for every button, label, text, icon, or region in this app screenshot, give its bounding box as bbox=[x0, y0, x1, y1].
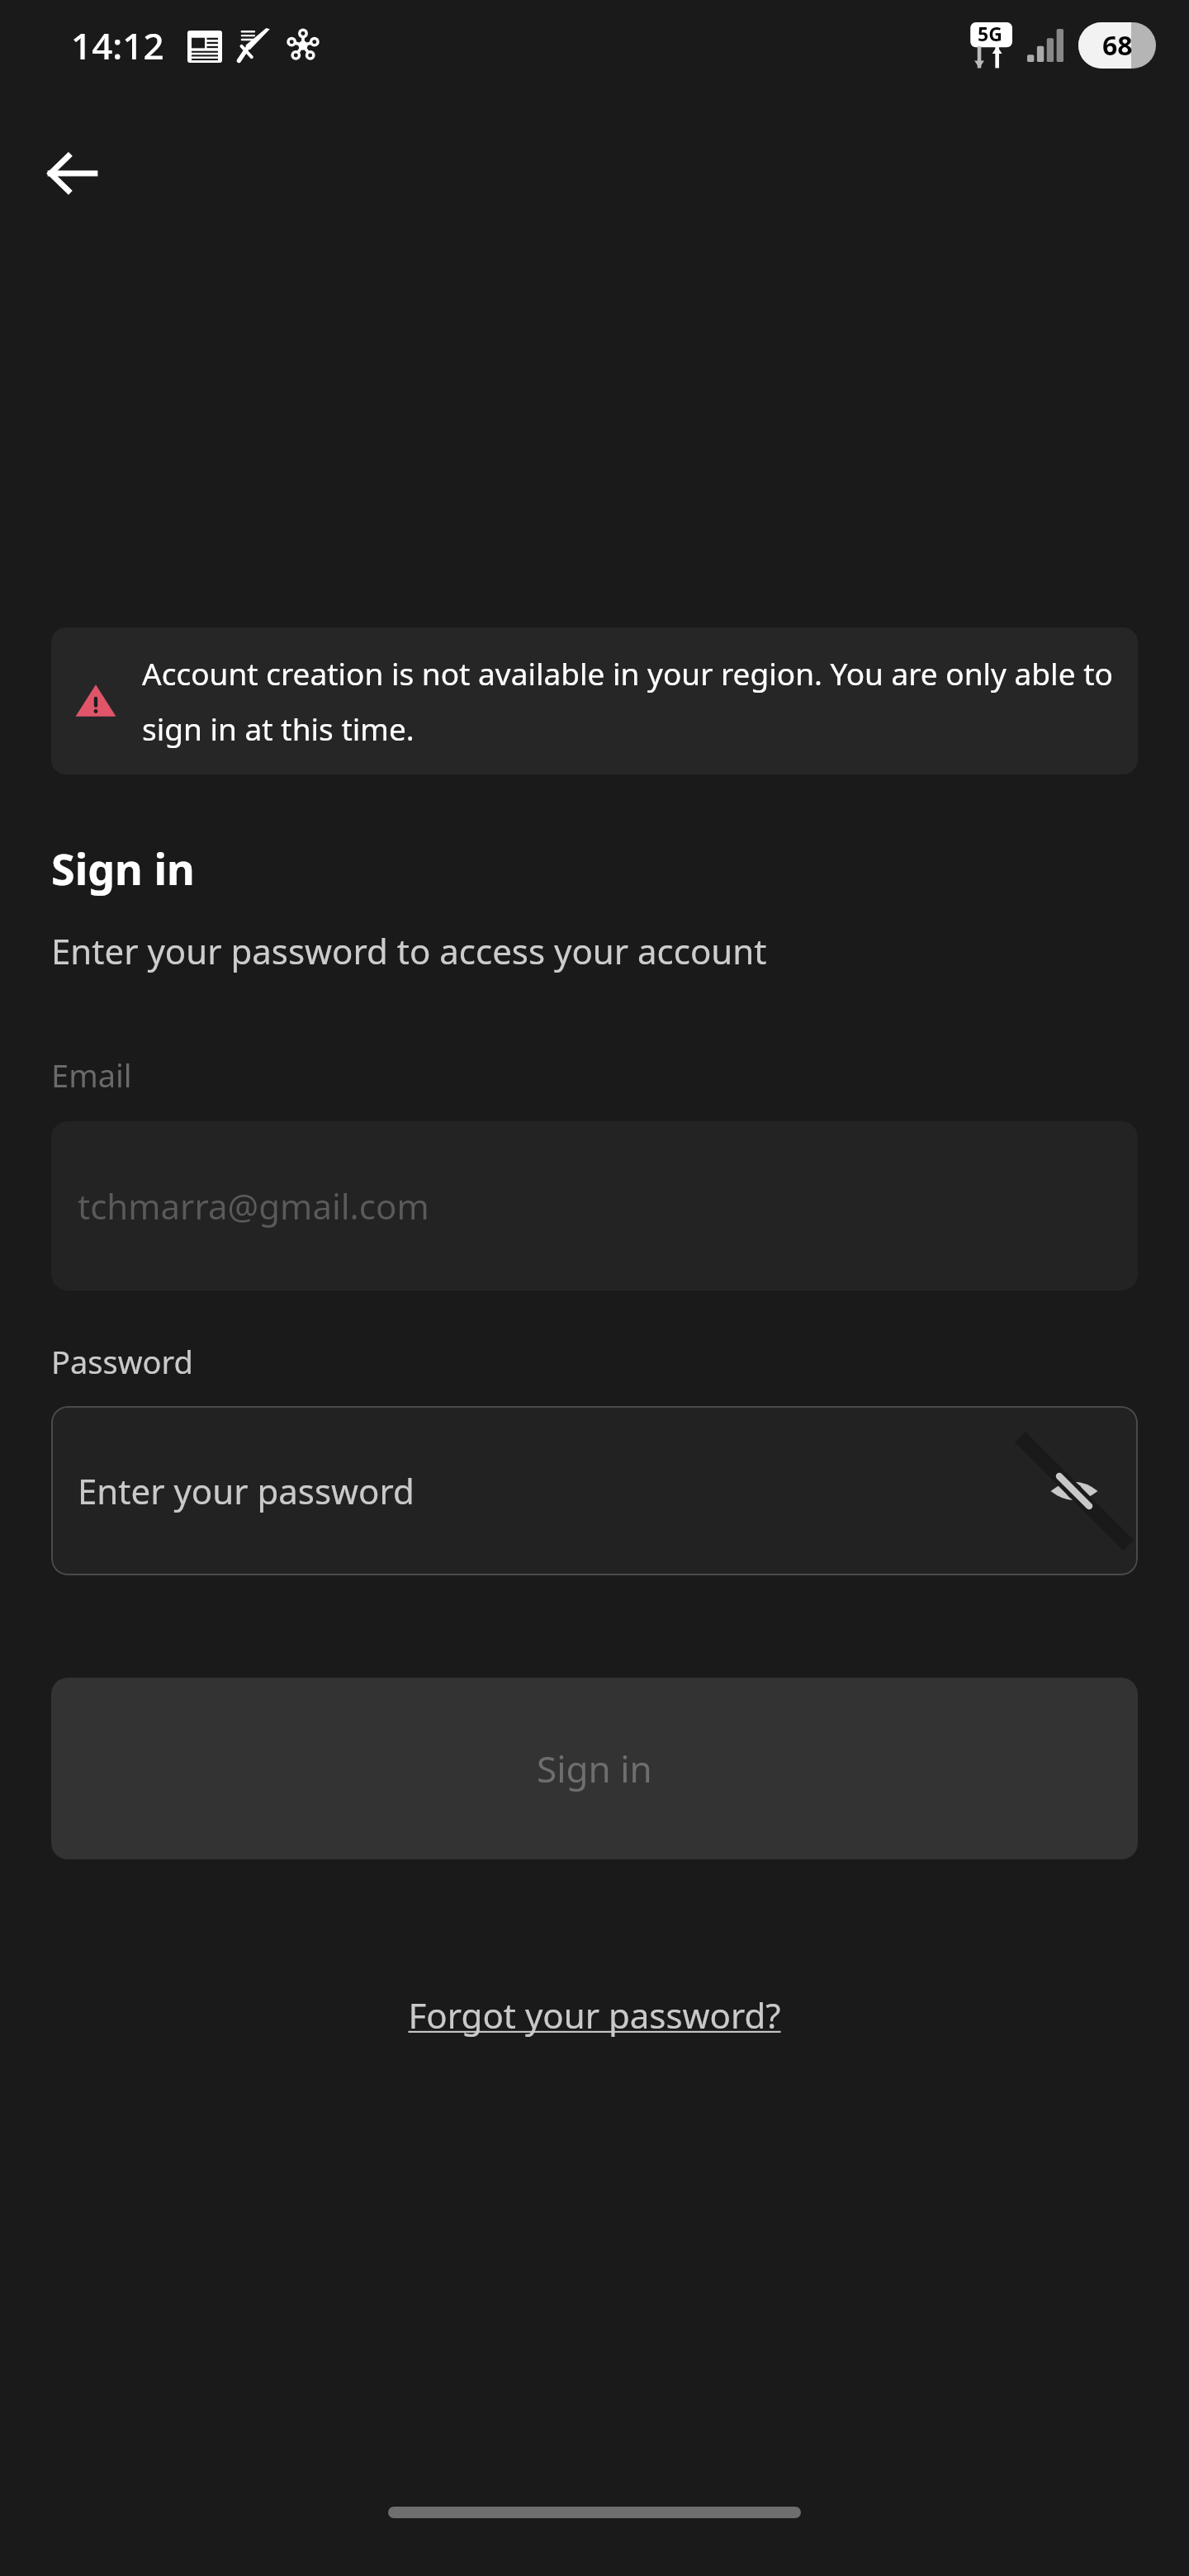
staticText: Enter your password bbox=[78, 1467, 414, 1514]
staticText: Account creation is not available in you… bbox=[142, 652, 1115, 750]
staticText: Forgot your password? bbox=[408, 1991, 781, 2039]
staticText: 14:12 bbox=[71, 21, 164, 70]
button[interactable]: Enter your password bbox=[51, 1406, 1138, 1575]
staticText: 5G bbox=[978, 21, 1002, 46]
button[interactable]: tchmarra@gmail.com bbox=[51, 1121, 1138, 1290]
staticText: Sign in bbox=[537, 1744, 652, 1793]
staticText: 68 bbox=[1102, 27, 1133, 64]
button[interactable]: Sign in bbox=[51, 1678, 1138, 1859]
staticText: Enter your password to access your accou… bbox=[51, 927, 767, 974]
staticText: Email bbox=[51, 1054, 132, 1096]
staticText: Sign in bbox=[51, 839, 195, 897]
staticText: Password bbox=[51, 1340, 193, 1383]
button[interactable]: Show password bbox=[1037, 1454, 1111, 1528]
button[interactable]: Forgot your password? bbox=[391, 1980, 798, 2050]
staticText: tchmarra@gmail.com bbox=[78, 1182, 429, 1229]
button[interactable]: Back bbox=[38, 139, 107, 208]
